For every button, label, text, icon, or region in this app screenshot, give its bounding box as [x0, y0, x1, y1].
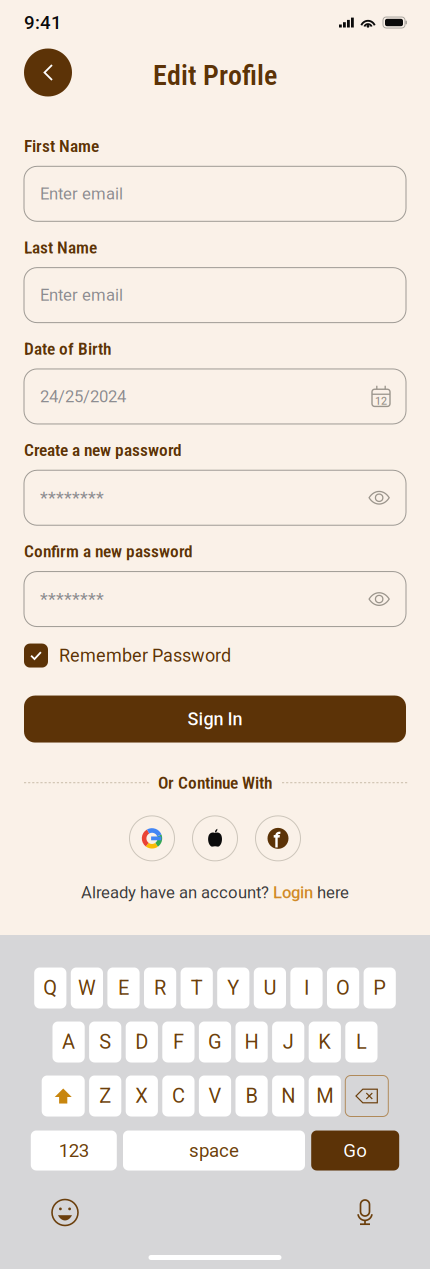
- button[interactable]: Dictation: [345, 1192, 385, 1232]
- button[interactable]: W: [71, 967, 103, 1008]
- staticText: Enter email: [40, 184, 123, 203]
- staticText: ********: [40, 589, 104, 609]
- staticText: Edit Profile: [153, 59, 277, 92]
- staticText: D: [135, 1030, 148, 1054]
- staticText: C: [172, 1084, 185, 1108]
- staticText: Already have an account?: [81, 883, 273, 902]
- button[interactable]: Y: [217, 967, 249, 1008]
- staticText: K: [318, 1030, 331, 1054]
- staticText: 24/25/2024: [40, 387, 126, 406]
- staticText: Last Name: [24, 237, 97, 258]
- button[interactable]: Shift: [42, 1075, 85, 1116]
- button[interactable]: P: [364, 967, 396, 1008]
- staticText: here: [313, 883, 349, 902]
- button[interactable]: 123: [31, 1130, 117, 1170]
- button[interactable]: Continue with Facebook: [255, 816, 300, 861]
- staticText: 9:41: [24, 12, 62, 33]
- button[interactable]: T: [181, 967, 213, 1008]
- button[interactable]: Emoji: [45, 1192, 85, 1232]
- staticText: 123: [59, 1140, 89, 1161]
- button[interactable]: R: [144, 967, 176, 1008]
- button[interactable]: V: [199, 1075, 231, 1116]
- button[interactable]: U: [254, 967, 286, 1008]
- button[interactable]: A: [52, 1021, 85, 1062]
- staticText: Remember Password: [59, 645, 231, 666]
- staticText: Login: [273, 883, 313, 902]
- staticText: 12: [375, 395, 387, 407]
- staticText: A: [62, 1030, 75, 1054]
- button[interactable]: M: [309, 1075, 341, 1116]
- button[interactable]: E: [107, 967, 140, 1008]
- staticText: Y: [227, 976, 239, 1000]
- button[interactable]: O: [327, 967, 359, 1008]
- button[interactable]: D: [126, 1021, 158, 1062]
- staticText: S: [99, 1030, 111, 1054]
- staticText: H: [245, 1030, 259, 1054]
- staticText: Confirm a new password: [24, 541, 193, 561]
- staticText: X: [135, 1084, 148, 1108]
- button[interactable]: Remember Password: [24, 644, 406, 668]
- button[interactable]: Back: [24, 48, 72, 96]
- staticText: First Name: [24, 136, 99, 156]
- staticText: M: [316, 1084, 333, 1108]
- button[interactable]: Continue with Apple: [192, 816, 237, 861]
- staticText: space: [189, 1140, 239, 1161]
- staticText: U: [263, 976, 276, 1000]
- staticText: Or Continue With: [158, 773, 272, 793]
- staticText: P: [373, 976, 386, 1000]
- button[interactable]: Already have an account?: [81, 883, 349, 902]
- staticText: R: [154, 976, 166, 1000]
- button[interactable]: K: [309, 1021, 341, 1062]
- button[interactable]: L: [345, 1021, 377, 1062]
- button[interactable]: X: [126, 1075, 158, 1116]
- staticText: Q: [43, 976, 57, 1000]
- staticText: L: [356, 1030, 367, 1054]
- staticText: ********: [40, 488, 104, 508]
- button[interactable]: B: [235, 1075, 268, 1116]
- button[interactable]: Continue with Google: [129, 816, 174, 861]
- staticText: Sign In: [187, 708, 242, 730]
- staticText: I: [304, 976, 309, 1000]
- staticText: G: [208, 1030, 222, 1054]
- button[interactable]: Sign In: [24, 696, 406, 743]
- button[interactable]: F: [162, 1021, 194, 1062]
- staticText: Date of Birth: [24, 339, 111, 359]
- button[interactable]: Z: [89, 1075, 121, 1116]
- button[interactable]: H: [235, 1021, 268, 1062]
- button[interactable]: space: [123, 1130, 305, 1170]
- staticText: Enter email: [40, 285, 123, 305]
- staticText: F: [173, 1030, 184, 1054]
- staticText: J: [283, 1030, 294, 1054]
- button[interactable]: Q: [34, 967, 66, 1008]
- staticText: B: [246, 1084, 258, 1108]
- staticText: Z: [99, 1084, 111, 1108]
- staticText: Go: [343, 1140, 367, 1161]
- button[interactable]: N: [272, 1075, 304, 1116]
- button[interactable]: C: [162, 1075, 194, 1116]
- staticText: E: [118, 976, 129, 1000]
- staticText: Create a new password: [24, 440, 182, 460]
- button[interactable]: I: [290, 967, 323, 1008]
- staticText: W: [78, 976, 96, 1000]
- button[interactable]: S: [89, 1021, 121, 1062]
- staticText: T: [191, 976, 203, 1000]
- button[interactable]: G: [199, 1021, 231, 1062]
- staticText: O: [336, 976, 350, 1000]
- staticText: V: [208, 1084, 221, 1108]
- button[interactable]: Go: [311, 1130, 399, 1170]
- button[interactable]: Delete: [345, 1075, 388, 1116]
- button[interactable]: J: [272, 1021, 304, 1062]
- staticText: N: [281, 1084, 295, 1108]
